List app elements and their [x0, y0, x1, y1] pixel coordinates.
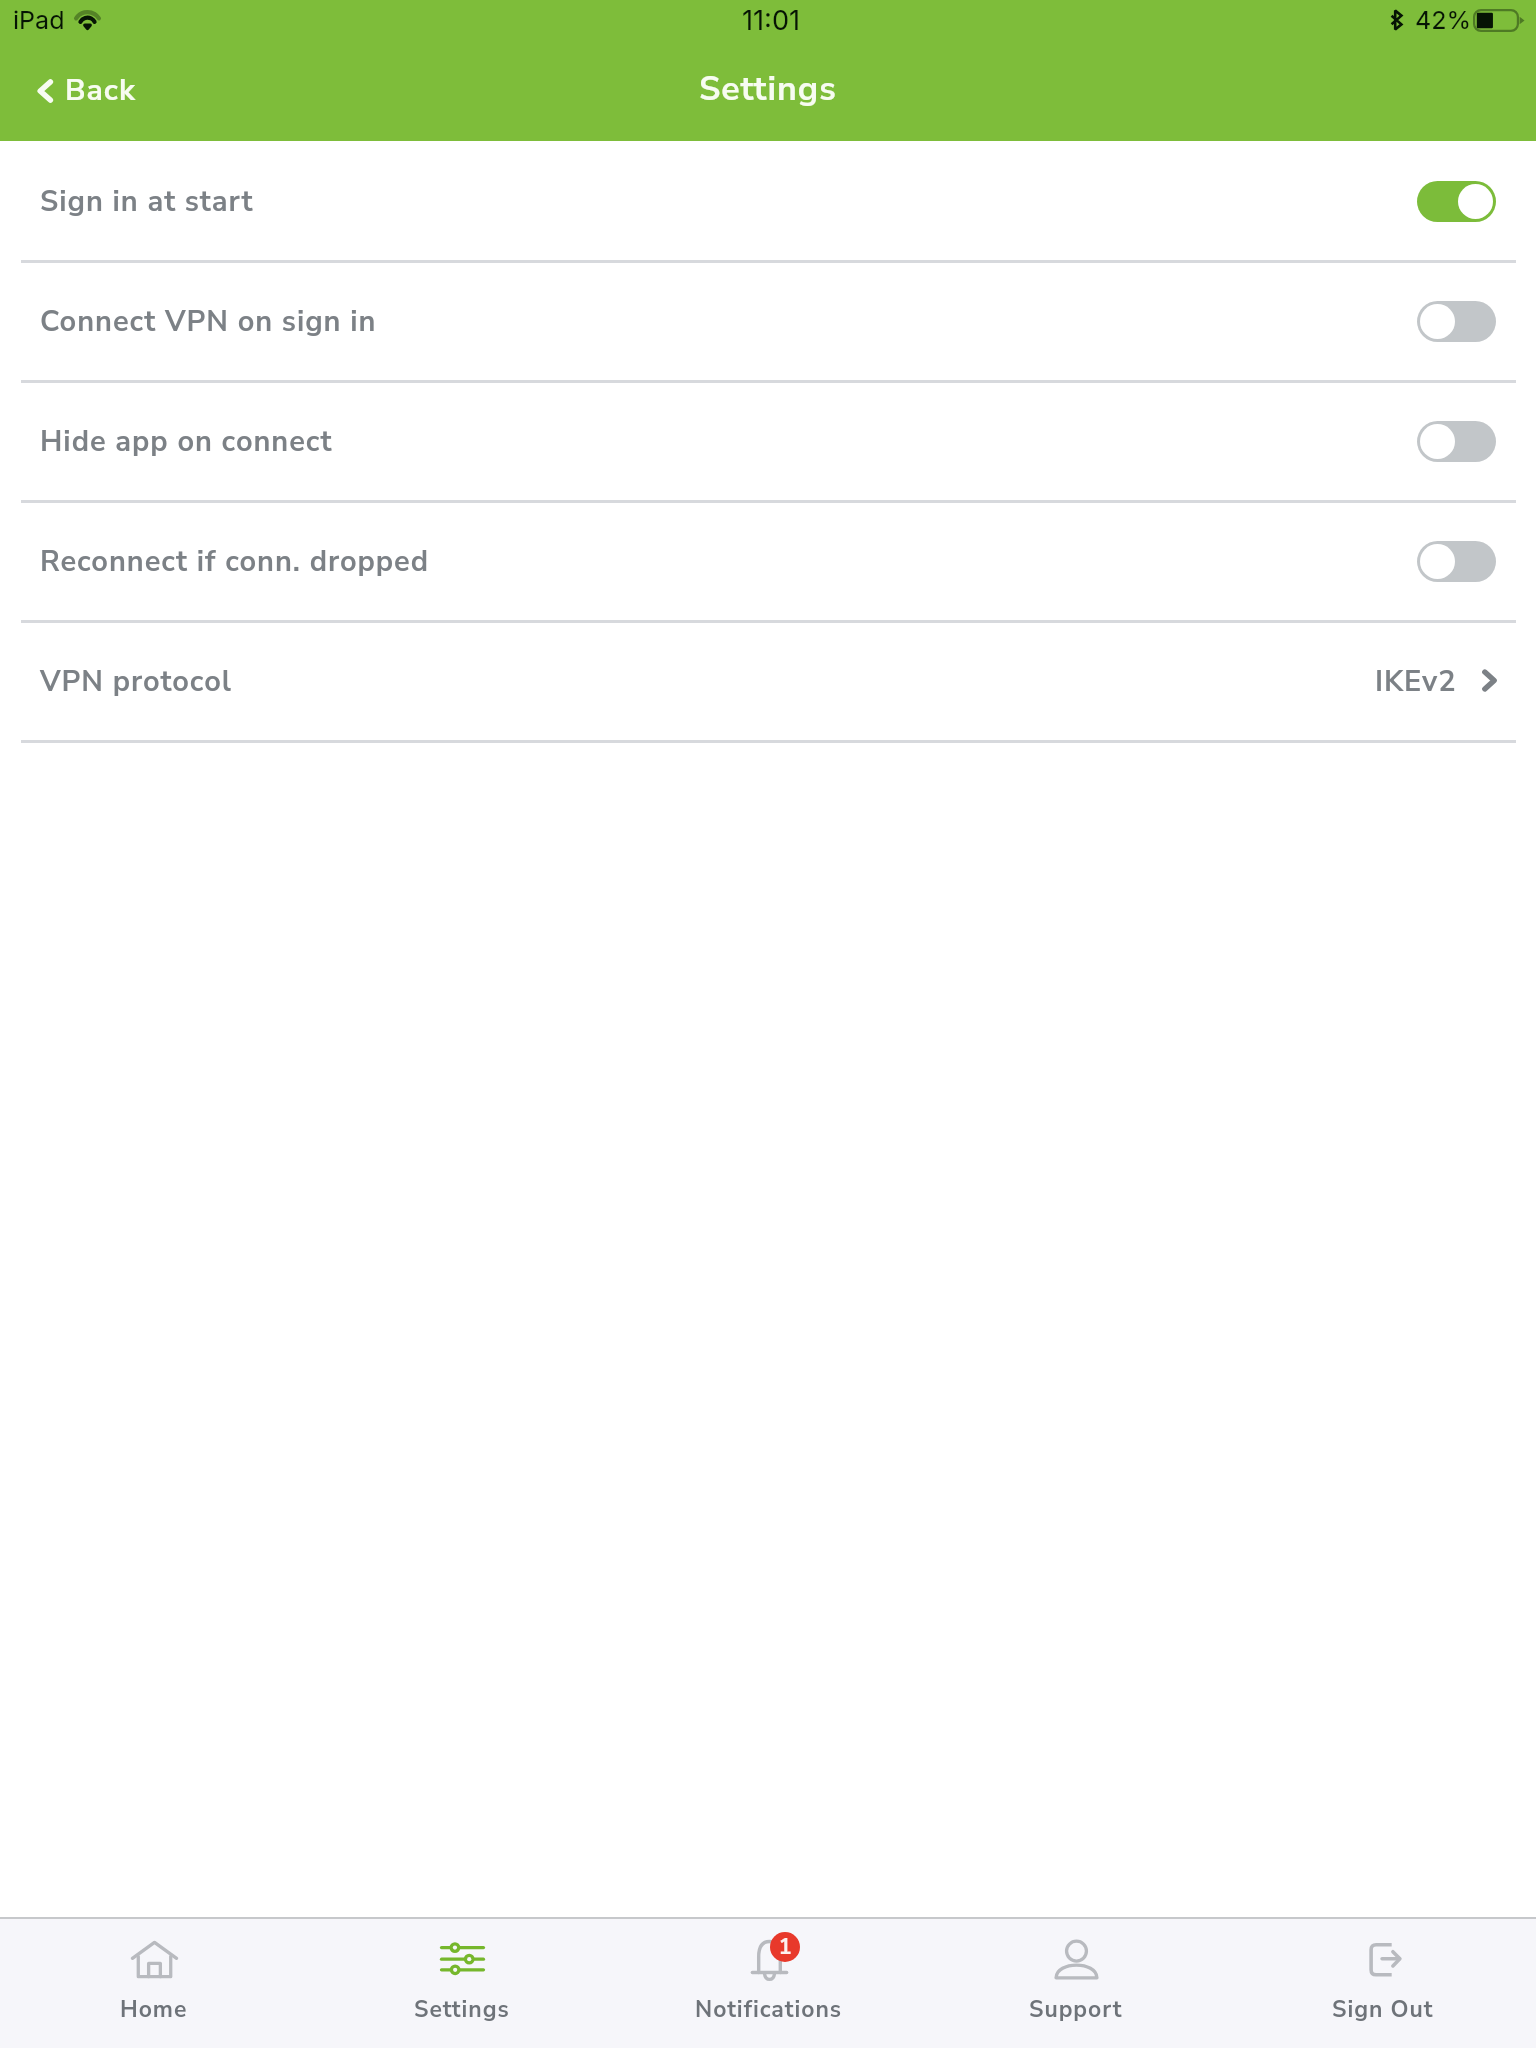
- button[interactable]: 1: [615, 1919, 922, 2048]
- button[interactable]: Sign Out: [1229, 1919, 1536, 2048]
- staticText: VPN protocol: [40, 662, 232, 702]
- button[interactable]: Support: [922, 1919, 1229, 2048]
- staticText: Connect VPN on sign in: [40, 302, 377, 342]
- staticText: Settings: [699, 66, 837, 112]
- staticText: iPad: [13, 5, 65, 35]
- button[interactable]: Settings: [308, 1919, 615, 2048]
- button[interactable]: Connect VPN on sign in: [0, 263, 1536, 383]
- staticText: Sign Out: [1332, 1994, 1434, 2025]
- button[interactable]: Hide app on connect: [0, 383, 1536, 503]
- staticText: IKEv2: [1375, 662, 1457, 702]
- staticText: Notifications: [695, 1994, 842, 2025]
- staticText: 1: [778, 1932, 792, 1962]
- button[interactable]: Switch off: [1417, 541, 1496, 582]
- button[interactable]: Home: [0, 1919, 308, 2048]
- button[interactable]: Switch off: [1417, 421, 1496, 462]
- staticText: Back: [65, 70, 136, 111]
- staticText: Settings: [414, 1994, 510, 2025]
- button[interactable]: Switch on: [1417, 181, 1496, 222]
- staticText: Sign in at start: [40, 182, 254, 222]
- button[interactable]: Switch off: [1417, 301, 1496, 342]
- staticText: 11:01: [742, 4, 801, 37]
- staticText: Home: [120, 1994, 188, 2025]
- staticText: 42%: [1415, 5, 1472, 35]
- button[interactable]: Back: [32, 66, 142, 115]
- button[interactable]: VPN protocol: [0, 623, 1536, 743]
- button[interactable]: Reconnect if conn. dropped: [0, 503, 1536, 623]
- staticText: Support: [1029, 1994, 1123, 2025]
- staticText: Reconnect if conn. dropped: [40, 542, 430, 582]
- button[interactable]: Sign in at start: [0, 143, 1536, 263]
- staticText: Hide app on connect: [40, 422, 333, 462]
